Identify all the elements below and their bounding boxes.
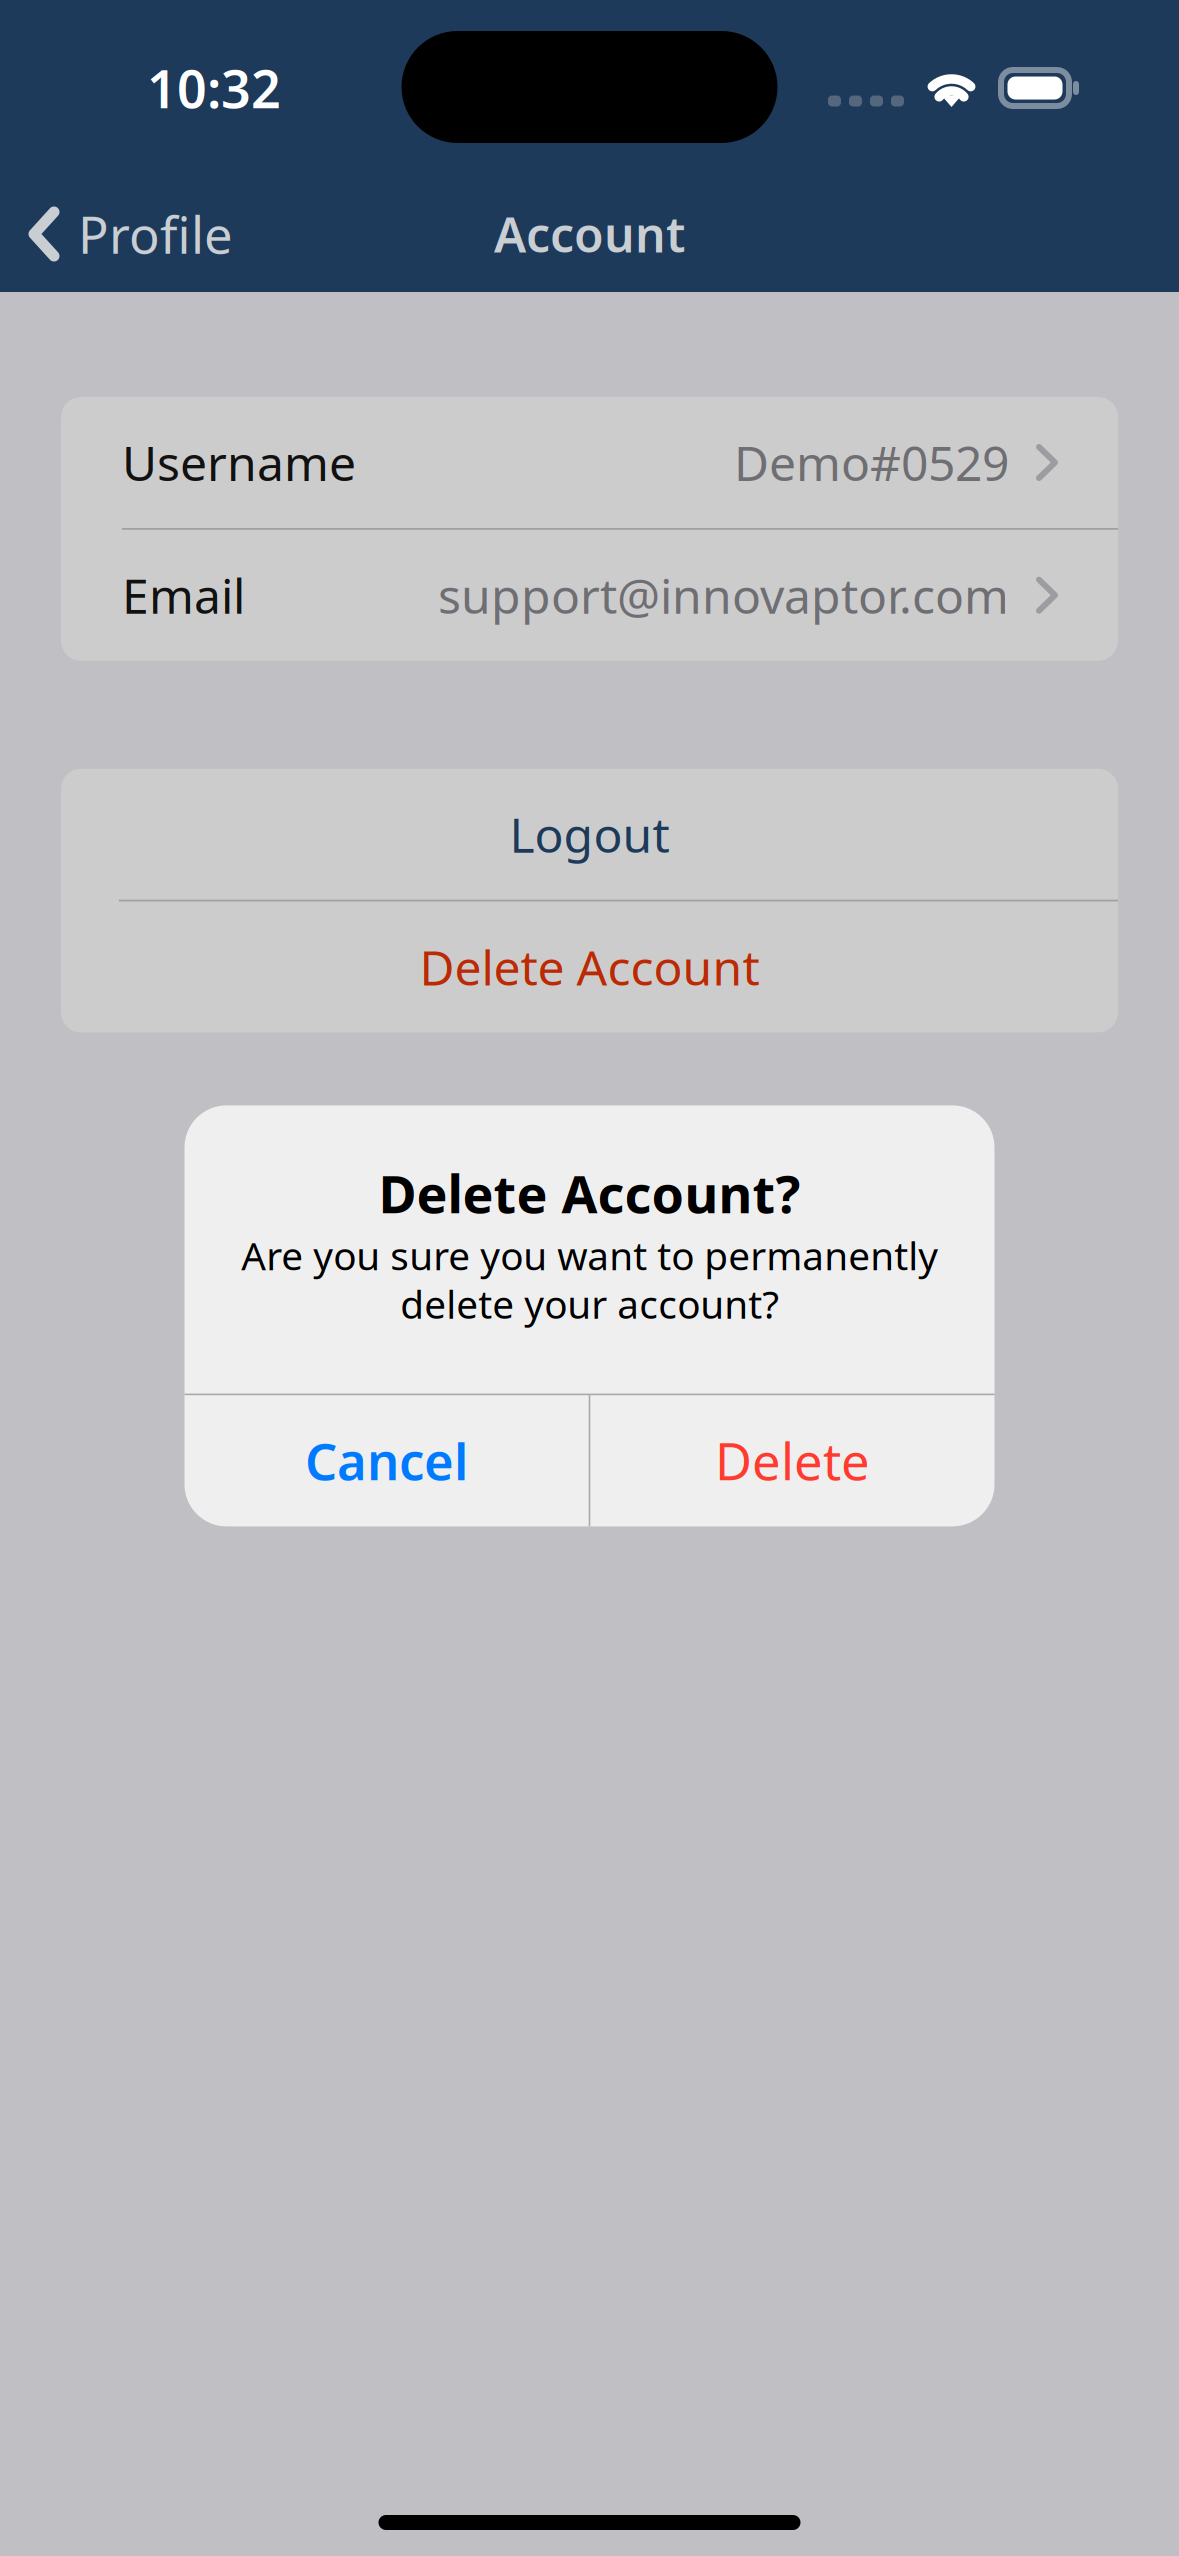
staticText: Logout — [509, 802, 669, 866]
button[interactable]: Back to Profile — [0, 182, 255, 286]
button[interactable]: Username — [61, 397, 1118, 528]
staticText: Delete Account? — [378, 1159, 800, 1228]
staticText: Delete — [715, 1427, 870, 1494]
staticText: Cancel — [305, 1427, 468, 1494]
staticText: Demo#0529 — [734, 431, 1009, 494]
staticText: support@innovaptor.com — [438, 563, 1009, 627]
button[interactable]: Delete — [590, 1395, 994, 1526]
staticText: Username — [122, 431, 356, 494]
staticText: Profile — [78, 200, 233, 268]
staticText: 10:32 — [147, 53, 281, 123]
staticText: Email — [122, 563, 245, 627]
button[interactable]: Cancel — [184, 1395, 589, 1526]
button[interactable]: Delete Account — [61, 901, 1118, 1032]
staticText: Delete Account — [419, 935, 759, 999]
button[interactable]: Logout — [61, 769, 1118, 900]
button[interactable]: Email — [61, 530, 1118, 661]
staticText: Are you sure you want to permanently del… — [241, 1230, 938, 1329]
staticText: Account — [494, 202, 685, 266]
